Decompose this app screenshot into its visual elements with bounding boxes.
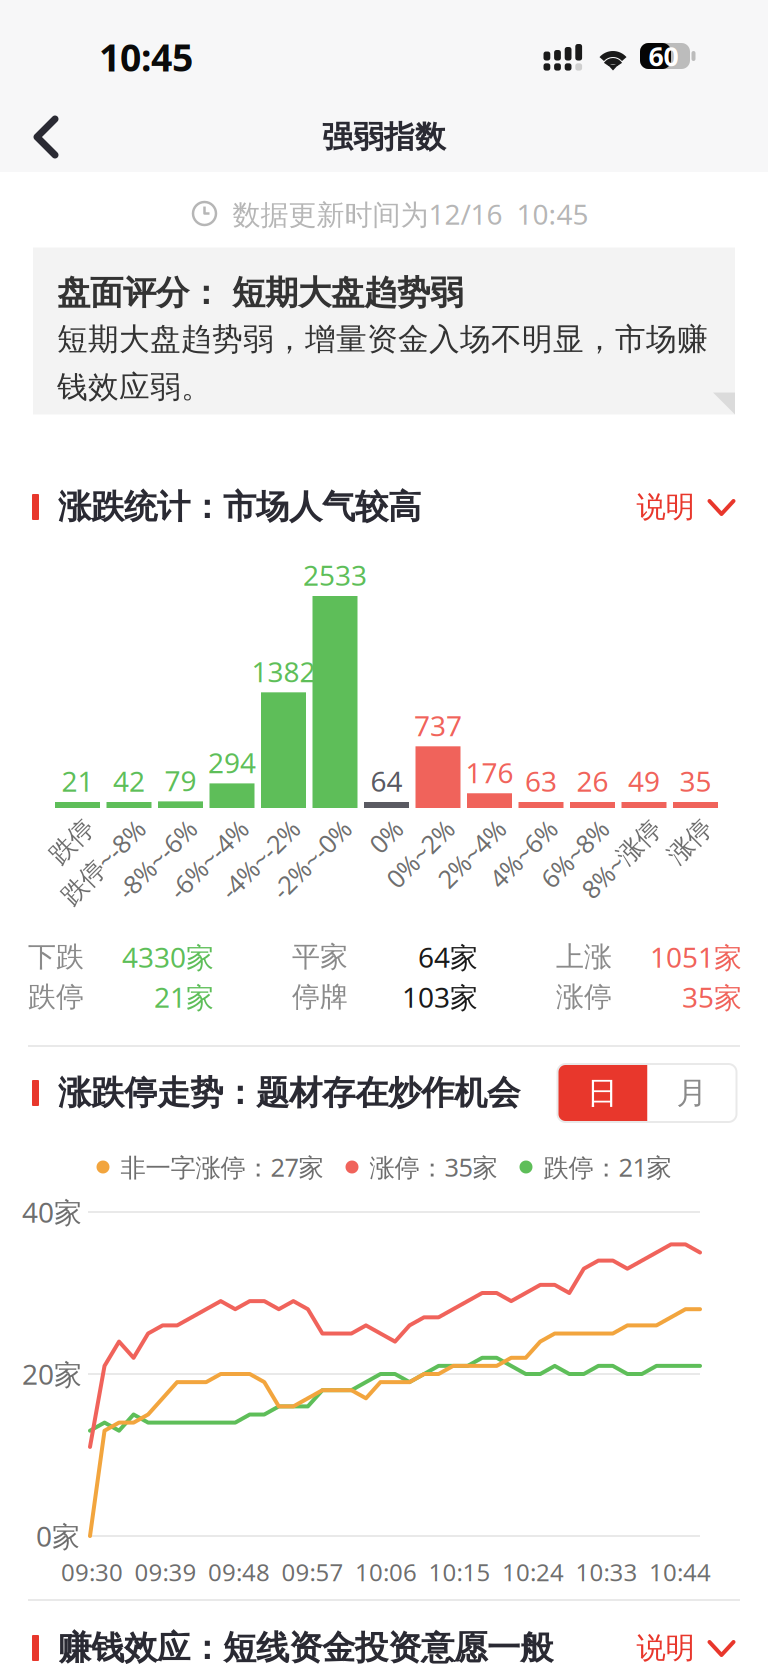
staticText: 涨停：35家 (369, 1150, 497, 1184)
staticText: 40家 (22, 1193, 82, 1231)
staticText: 跌停 (29, 812, 79, 843)
staticText: 跌停~-8% (24, 811, 131, 845)
staticText: 4%~6% (459, 811, 543, 845)
staticText: 294 (208, 744, 256, 781)
staticText: 8%~涨停 (547, 811, 646, 845)
staticText: 64 (370, 762, 402, 800)
button[interactable]: 月 (647, 1064, 736, 1122)
staticText: 10:06 (355, 1556, 417, 1588)
staticText: 涨停 (556, 980, 612, 1014)
staticText: 说明 (636, 1630, 694, 1666)
staticText: 强弱指数 (322, 118, 446, 156)
staticText: 1051家 (650, 938, 742, 976)
staticText: -2%~-0% (237, 811, 337, 845)
staticText: 月 (676, 1074, 707, 1112)
staticText: 09:48 (208, 1556, 270, 1588)
staticText: 0家 (36, 1517, 80, 1555)
staticText: 10:44 (649, 1556, 711, 1588)
staticText: 下跌 (28, 940, 84, 974)
staticText: 09:57 (281, 1556, 343, 1588)
staticText: 跌停 (28, 980, 84, 1014)
staticText: 10:45 (99, 32, 193, 82)
staticText: 平家 (292, 940, 348, 974)
staticText: 64家 (418, 938, 478, 976)
staticText: 日 (587, 1074, 618, 1112)
staticText: 赚钱效应：短线资金投资意愿一般 (58, 1627, 553, 1668)
staticText: 10:15 (428, 1556, 490, 1588)
staticText: 35家 (682, 978, 742, 1016)
staticText: 2%~4% (407, 811, 491, 845)
staticText: 176 (465, 754, 513, 791)
staticText: 涨跌统计：市场人气较高 (58, 486, 421, 527)
staticText: 21家 (154, 978, 214, 1016)
staticText: 60 (648, 38, 678, 74)
staticText: 79 (164, 762, 196, 799)
staticText: 涨跌停走势：题材存在炒作机会 (58, 1072, 520, 1113)
staticText: 103家 (402, 978, 478, 1016)
staticText: 6%~8% (510, 811, 594, 845)
staticText: 上涨 (556, 940, 612, 974)
staticText: 10:24 (502, 1556, 564, 1588)
staticText: 21 (61, 762, 93, 800)
button[interactable]: 说明 (626, 1620, 745, 1669)
staticText: 737 (414, 707, 462, 744)
staticText: 63 (525, 762, 557, 800)
staticText: 0%~2% (356, 811, 440, 845)
staticText: 盘面评分： 短期大盘趋势弱 (57, 272, 463, 313)
button[interactable]: 日 (557, 1064, 647, 1122)
staticText: 1382 (251, 653, 315, 690)
button[interactable]: 说明 (626, 479, 745, 535)
staticText: 0% (353, 811, 388, 845)
staticText: 10:33 (575, 1556, 637, 1588)
staticText: -8%~-6% (82, 811, 182, 845)
staticText: 09:30 (61, 1556, 123, 1588)
staticText: -6%~-4% (134, 811, 234, 845)
staticText: 跌停：21家 (543, 1150, 671, 1184)
staticText: 20家 (22, 1355, 82, 1393)
staticText: 2533 (303, 556, 367, 594)
button[interactable]: Back (5, 85, 89, 189)
staticText: 26 (576, 762, 608, 800)
staticText: 数据更新时间为12/16 10:45 (232, 195, 588, 233)
staticText: 短期大盘趋势弱，增量资金入场不明显，市场赚 钱效应弱。 (57, 320, 708, 406)
staticText: -4%~-2% (185, 811, 285, 845)
staticText: 42 (113, 762, 145, 800)
staticText: 35 (679, 762, 711, 800)
staticText: 49 (628, 762, 660, 800)
staticText: 09:39 (134, 1556, 196, 1588)
staticText: 涨停 (647, 812, 697, 843)
staticText: 说明 (636, 489, 694, 525)
staticText: 非一字涨停：27家 (120, 1150, 323, 1184)
staticText: 4330家 (122, 938, 214, 976)
staticText: 停牌 (292, 980, 348, 1014)
